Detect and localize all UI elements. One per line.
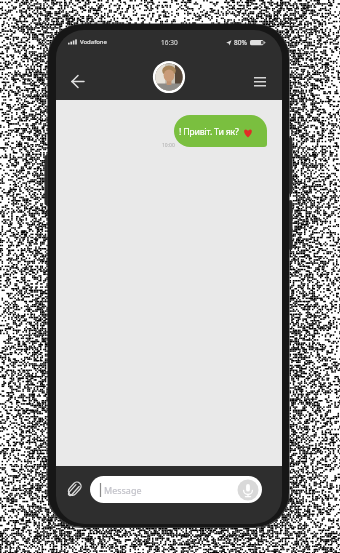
staticText: ! Привіт. Ти як? [179,126,239,138]
staticText: 80% [234,38,247,47]
button[interactable] [174,115,267,147]
button[interactable] [154,62,184,92]
button[interactable] [250,70,272,92]
button[interactable] [90,476,262,503]
staticText: 16:30 [161,38,178,47]
staticText: Vodafone [80,38,107,46]
button[interactable] [236,478,260,502]
button[interactable] [64,478,84,502]
staticText: Message [104,484,142,496]
button[interactable] [66,69,90,93]
staticText: 10:00 [162,142,175,149]
